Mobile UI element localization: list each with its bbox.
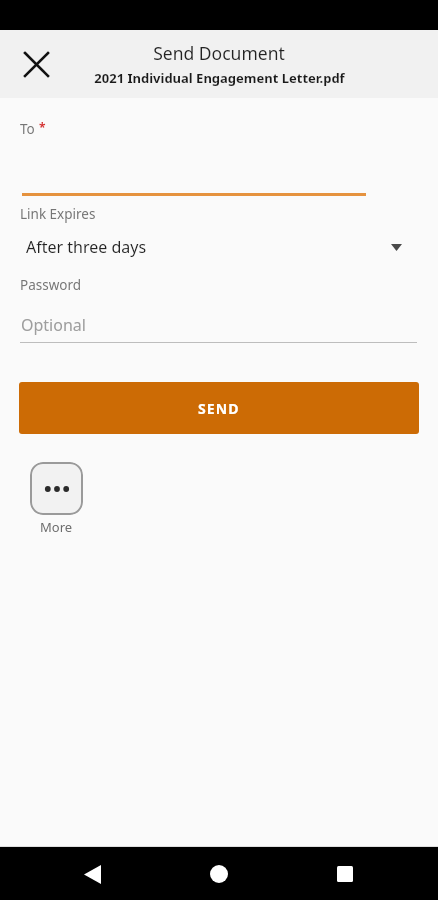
staticText: 2021 Individual Engagement Letter.pdf <box>94 69 345 87</box>
button[interactable]: Back <box>68 850 116 898</box>
other: More options <box>30 462 83 515</box>
button[interactable]: Home <box>195 850 243 898</box>
staticText: Send Document <box>153 41 285 65</box>
button[interactable]: Optional <box>0 294 438 354</box>
button[interactable]: After three days <box>0 233 438 261</box>
staticText: Password <box>20 276 82 294</box>
button[interactable] <box>0 138 438 205</box>
staticText: Link Expires <box>20 205 96 223</box>
staticText: Optional <box>21 314 86 336</box>
button[interactable]: SEND <box>19 382 419 434</box>
button[interactable]: Recent apps <box>321 850 369 898</box>
button[interactable]: More options <box>29 462 83 536</box>
staticText: To <box>20 120 35 138</box>
button[interactable]: Close <box>12 40 60 88</box>
staticText: * <box>39 119 46 135</box>
staticText: SEND <box>198 399 240 418</box>
staticText: After three days <box>26 236 147 258</box>
staticText: More <box>40 518 73 536</box>
